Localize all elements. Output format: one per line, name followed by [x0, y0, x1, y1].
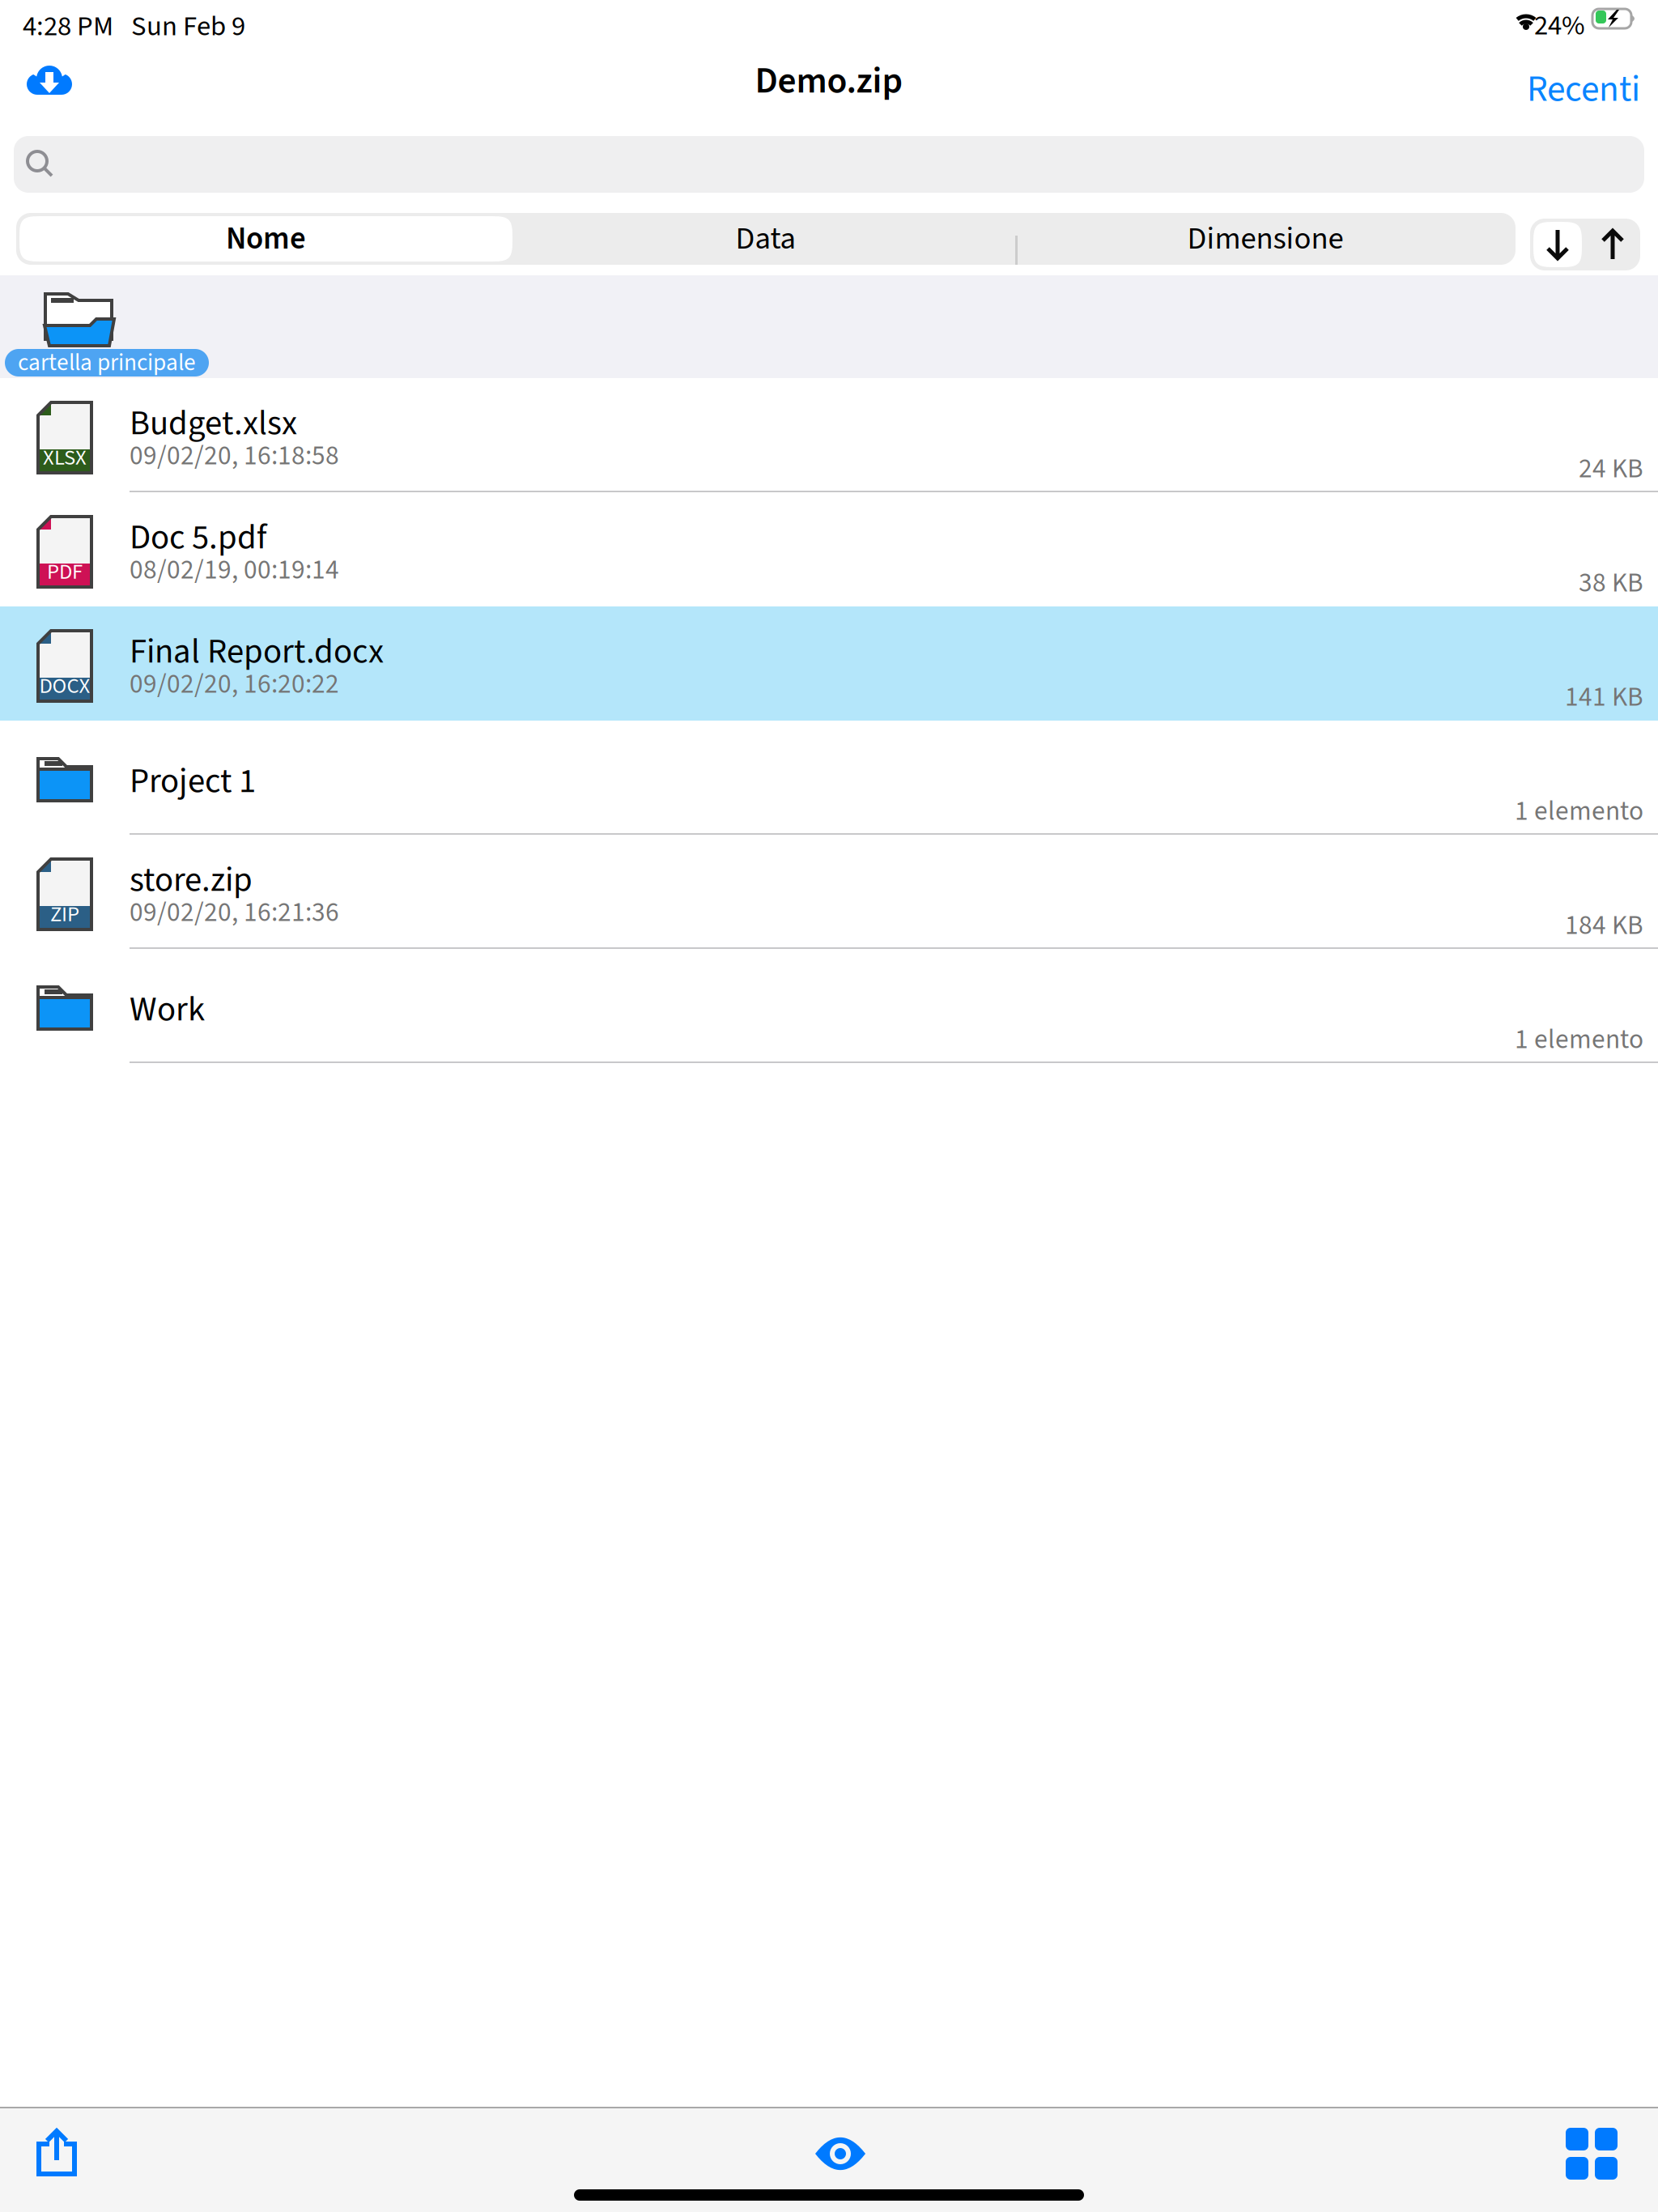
- button[interactable]: Grid view: [1558, 2120, 1626, 2188]
- staticText: ZIP: [50, 899, 79, 930]
- button[interactable]: Preview: [804, 2128, 877, 2180]
- staticText: 09/02/20, 16:18:58: [130, 437, 339, 475]
- staticText: cartella principale: [18, 346, 196, 380]
- staticText: Demo.zip: [755, 55, 903, 107]
- staticText: Work: [130, 985, 205, 1034]
- button[interactable]: ZIP: [0, 835, 1658, 949]
- button[interactable]: Share: [26, 2118, 87, 2186]
- button[interactable]: Project 1: [0, 721, 1658, 835]
- button[interactable]: Data: [516, 213, 1015, 265]
- staticText: Data: [735, 217, 795, 261]
- staticText: PDF: [47, 557, 83, 587]
- button[interactable]: DOCX: [0, 606, 1658, 721]
- staticText: 1 elemento: [1515, 792, 1643, 831]
- button[interactable]: Recenti: [1507, 47, 1658, 132]
- button[interactable]: cartella principale: [0, 275, 210, 378]
- staticText: 08/02/19, 00:19:14: [130, 551, 339, 589]
- button[interactable]: Sort ascending: [1585, 219, 1640, 270]
- staticText: Dimensione: [1187, 217, 1343, 261]
- staticText: Recenti: [1527, 63, 1640, 115]
- staticText: Project 1: [130, 757, 256, 806]
- button[interactable]: Download: [13, 51, 86, 109]
- button[interactable]: Search: [14, 136, 1644, 193]
- staticText: 141 KB: [1565, 678, 1643, 716]
- button[interactable]: PDF: [0, 492, 1658, 606]
- button[interactable]: XLSX: [0, 378, 1658, 492]
- staticText: XLSX: [43, 442, 87, 473]
- staticText: 38 KB: [1579, 564, 1643, 602]
- staticText: store.zip: [130, 855, 253, 905]
- button[interactable]: Sort descending: [1530, 219, 1585, 270]
- staticText: DOCX: [39, 671, 90, 702]
- staticText: 24%: [1534, 6, 1585, 46]
- staticText: Final Report.docx: [130, 627, 384, 676]
- staticText: Nome: [226, 217, 306, 261]
- staticText: 09/02/20, 16:20:22: [130, 665, 339, 703]
- staticText: Budget.xlsx: [130, 399, 297, 448]
- staticText: 09/02/20, 16:21:36: [130, 893, 339, 932]
- staticText: 184 KB: [1565, 906, 1643, 945]
- button[interactable]: Nome: [16, 213, 516, 265]
- staticText: Sun Feb 9: [131, 6, 245, 46]
- staticText: 24 KB: [1579, 450, 1643, 488]
- staticText: 1 elemento: [1515, 1020, 1643, 1059]
- staticText: Doc 5.pdf: [130, 513, 266, 562]
- button[interactable]: Work: [0, 949, 1658, 1063]
- staticText: 4:28 PM: [23, 6, 113, 46]
- button[interactable]: Dimensione: [1015, 213, 1516, 265]
